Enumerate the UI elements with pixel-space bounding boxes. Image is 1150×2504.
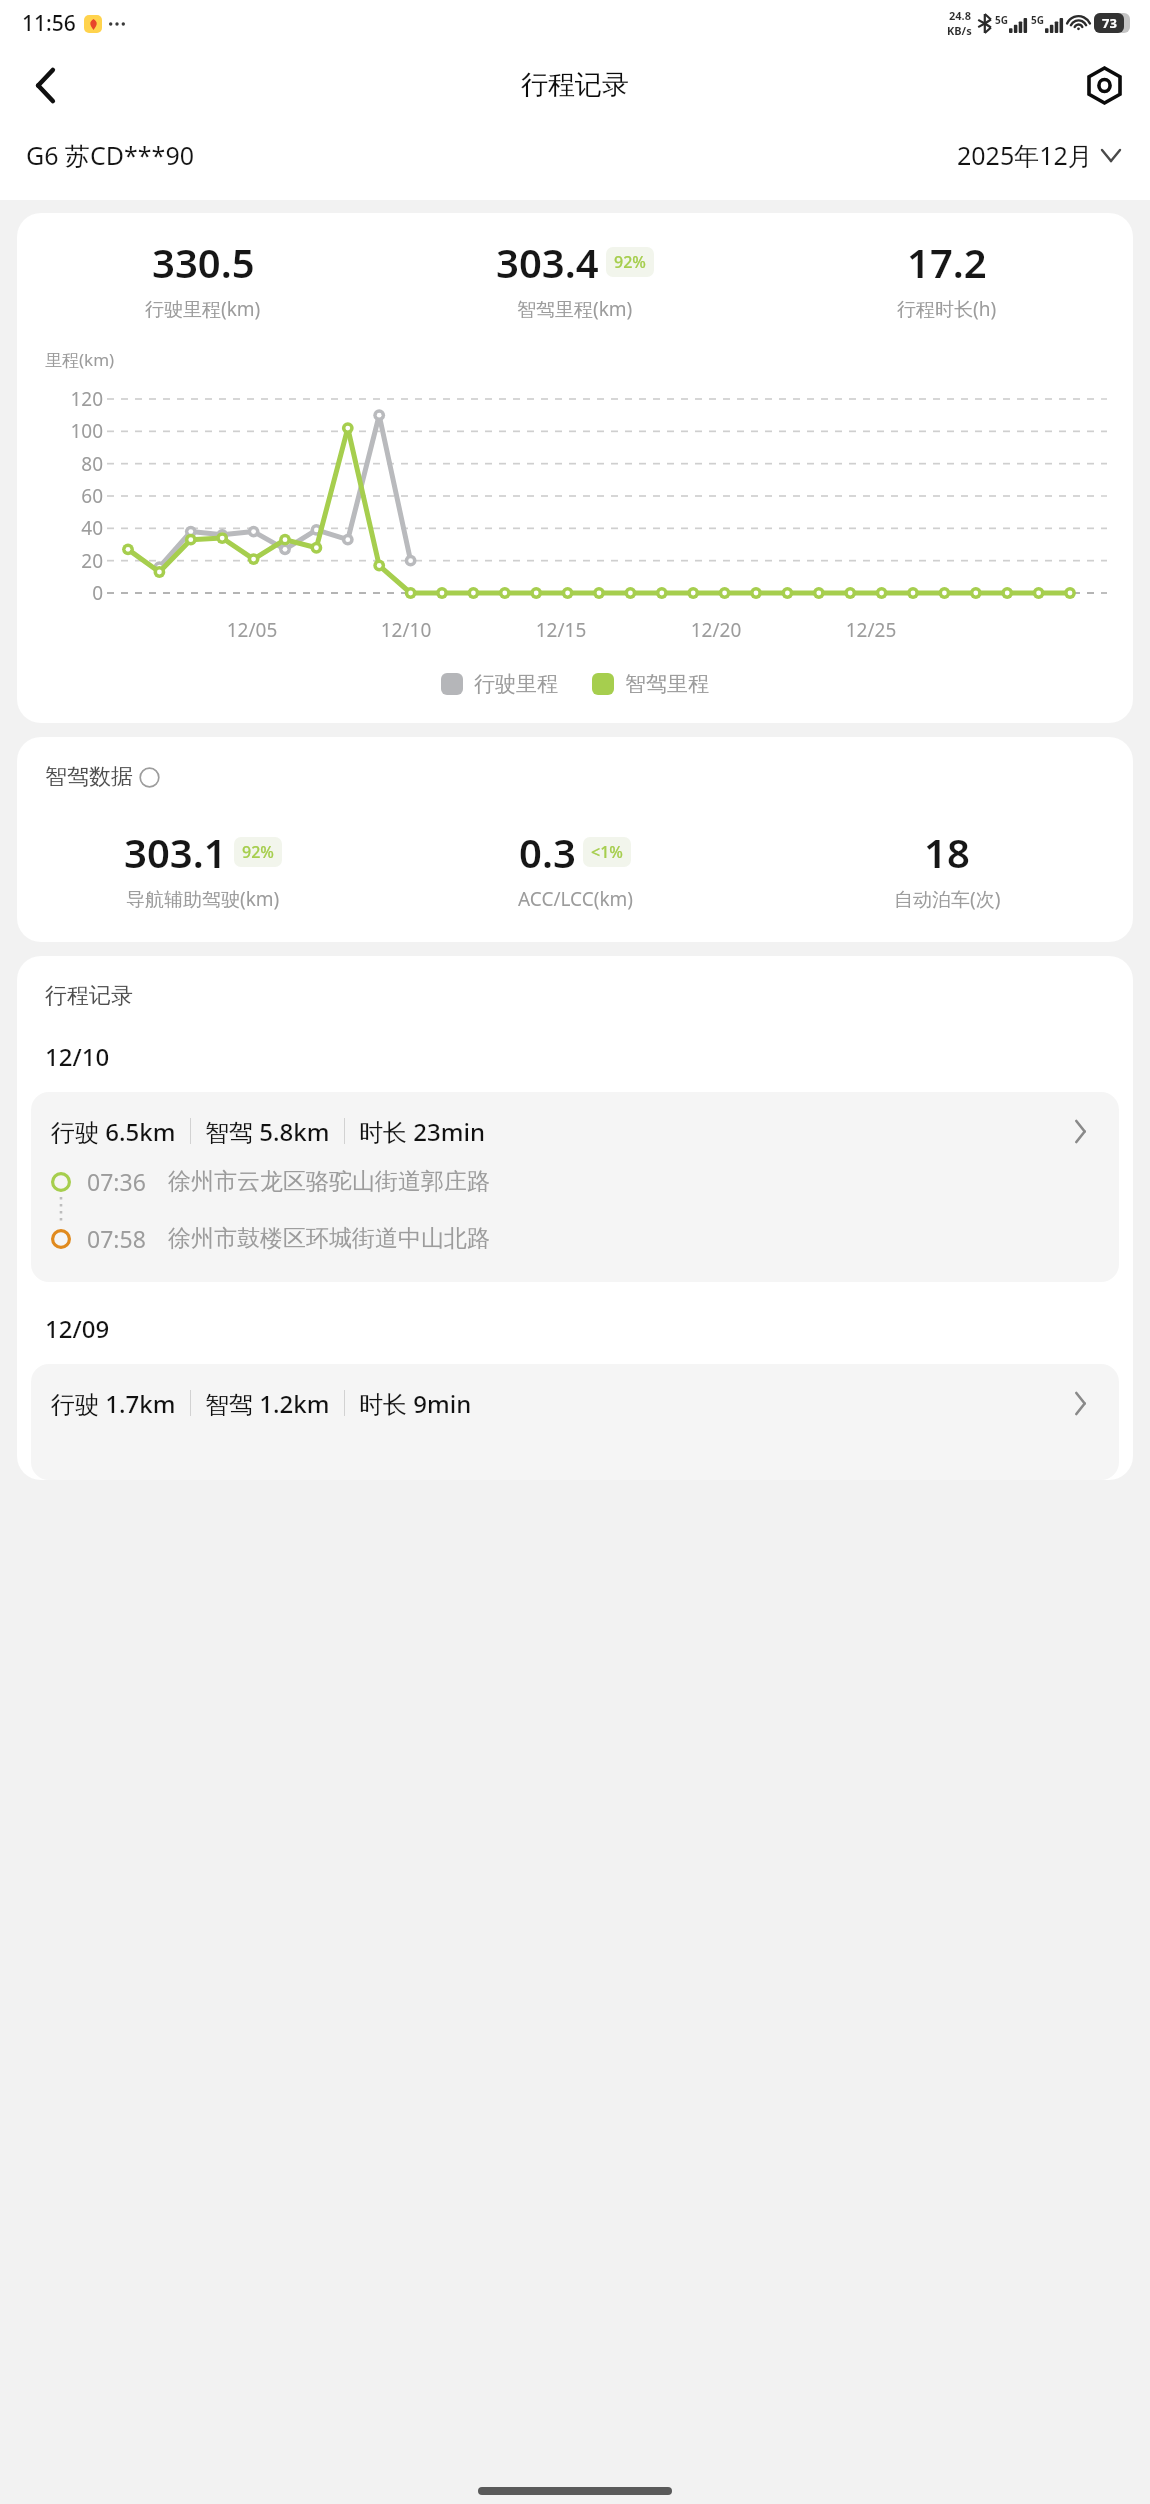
staticText: 12/10 <box>356 617 456 643</box>
staticText: 行程时长(h) <box>897 296 997 322</box>
staticText: 徐州市云龙区骆驼山街道郭庄路 <box>168 1167 490 1196</box>
staticText: 时长 23min <box>359 1115 485 1148</box>
button[interactable]: Trip details <box>1063 1114 1097 1148</box>
button[interactable]: 智驾数据 <box>45 763 160 791</box>
staticText: 行驶 6.5km <box>51 1115 176 1148</box>
staticText: 07:58 <box>87 1223 146 1254</box>
staticText: 11:56 <box>22 9 76 38</box>
staticText: 0 <box>17 580 103 606</box>
staticText: 24.8 <box>949 8 971 23</box>
staticText: 12/20 <box>666 617 766 643</box>
staticText: 303.1 <box>124 825 227 879</box>
button[interactable]: Settings <box>1076 57 1132 113</box>
staticText: 40 <box>17 515 103 541</box>
staticText: 303.4 <box>496 235 599 289</box>
staticText: 07:36 <box>87 1166 146 1197</box>
staticText: 5G <box>1031 13 1044 27</box>
staticText: 行驶 1.7km <box>51 1387 176 1420</box>
button[interactable]: 行驶 6.5km <box>31 1092 1119 1282</box>
staticText: 12/25 <box>821 617 921 643</box>
staticText: 60 <box>17 483 103 509</box>
button[interactable]: Back <box>18 58 72 112</box>
staticText: 智驾 1.2km <box>205 1387 330 1420</box>
staticText: 导航辅助驾驶(km) <box>126 886 280 912</box>
staticText: KB/s <box>947 23 972 38</box>
staticText: 120 <box>17 386 103 412</box>
staticText: <1% <box>591 841 623 863</box>
staticText: 行驶里程 <box>474 671 558 697</box>
staticText: 12/15 <box>511 617 611 643</box>
staticText: 12/09 <box>45 1312 110 1345</box>
staticText: 行驶里程(km) <box>145 296 261 322</box>
staticText: ACC/LCC(km) <box>518 886 633 912</box>
staticText: 徐州市鼓楼区环城街道中山北路 <box>168 1224 490 1253</box>
staticText: 12/10 <box>45 1040 110 1073</box>
button[interactable]: Trip details <box>1063 1386 1097 1420</box>
staticText: 92% <box>242 841 274 863</box>
staticText: 18 <box>924 825 970 879</box>
staticText: 里程(km) <box>45 348 115 371</box>
staticText: 20 <box>17 548 103 574</box>
staticText: 17.2 <box>907 235 987 289</box>
staticText: 智驾里程 <box>625 671 709 697</box>
button[interactable]: 行驶 1.7km <box>31 1364 1119 1480</box>
staticText: 行程记录 <box>521 68 629 102</box>
staticText: 92% <box>614 251 646 273</box>
staticText: 智驾数据 <box>45 763 133 791</box>
staticText: G6 苏CD***90 <box>26 138 194 172</box>
staticText: 自动泊车(次) <box>894 886 1001 912</box>
button[interactable]: 2025年12月 <box>953 132 1124 178</box>
staticText: 73 <box>1102 14 1117 32</box>
staticText: 330.5 <box>152 235 255 289</box>
staticText: 5G <box>995 13 1008 27</box>
staticText: 0.3 <box>519 825 576 879</box>
staticText: 100 <box>17 418 103 444</box>
staticText: 12/05 <box>202 617 302 643</box>
staticText: 智驾里程(km) <box>517 296 633 322</box>
staticText: 2025年12月 <box>957 138 1093 172</box>
staticText: 80 <box>17 451 103 477</box>
staticText: 时长 9min <box>359 1387 472 1420</box>
staticText: 智驾 5.8km <box>205 1115 330 1148</box>
staticText: 行程记录 <box>45 982 133 1010</box>
